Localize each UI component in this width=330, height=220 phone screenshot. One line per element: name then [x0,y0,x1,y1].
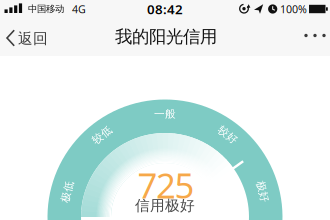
staticText: 较低 [91,128,113,141]
staticText: 我的阳光信用 [115,26,217,47]
staticText: 100% [280,2,307,16]
staticText: 较好 [217,128,239,141]
staticText: 极低 [56,185,78,198]
staticText: 极好 [252,185,274,198]
staticText: 信用极好 [135,196,195,214]
staticText: 725 [138,162,194,208]
staticText: 返回 [18,29,48,47]
staticText: 4G [72,2,86,16]
staticText: 一般 [154,107,176,120]
staticText: 08:42 [147,0,183,18]
staticText: 中国移动 [28,3,64,15]
